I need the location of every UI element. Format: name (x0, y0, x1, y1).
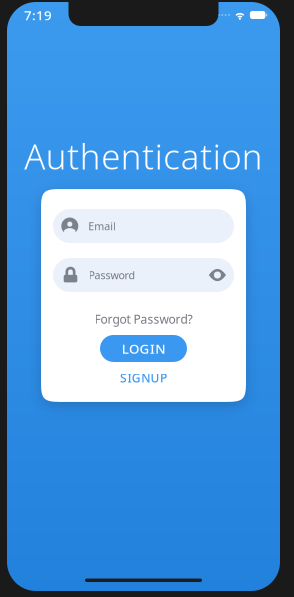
staticText: Email (88, 219, 116, 233)
staticText: Forgot Password? (94, 311, 192, 327)
button[interactable]: Show password (209, 269, 226, 281)
staticText: Password (88, 268, 135, 282)
button[interactable]: SIGNUP (114, 368, 173, 388)
staticText: Authentication (24, 133, 263, 179)
staticText: 7:19 (24, 6, 52, 24)
staticText: SIGNUP (120, 370, 167, 386)
button[interactable]: LOGIN (100, 335, 187, 362)
button[interactable]: Forgot Password? (90, 310, 196, 328)
staticText: LOGIN (122, 340, 165, 357)
